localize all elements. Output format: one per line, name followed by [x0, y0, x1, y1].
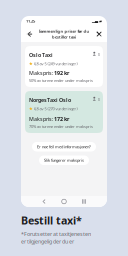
staticText: er tilgjengelig der du er	[21, 238, 74, 245]
staticText: NorgesTaxi Oslo	[29, 96, 71, 104]
staticText: 50% av turene ender under makspris	[29, 78, 93, 83]
button[interactable]: Tilbake	[24, 28, 34, 40]
staticText: Slik fungerer makspris	[44, 158, 84, 163]
button[interactable]: Pause	[79, 196, 89, 207]
staticText: Oslo Taxi	[29, 51, 53, 59]
staticText: Makspris: 192 kr	[29, 69, 69, 76]
button[interactable]: Er noe feil med informasjonen?	[32, 142, 96, 151]
staticText: 4	[97, 51, 99, 57]
button[interactable]: Slik fungerer makspris	[39, 155, 89, 165]
button[interactable]: Oslo Taxi	[25, 46, 103, 87]
staticText: 4,8 av 5 (270 vurderinger)	[34, 106, 78, 111]
button[interactable]: NorgesTaxi Oslo	[25, 91, 103, 133]
staticText: Er noe feil med informasjonen?	[37, 144, 91, 149]
staticText: Bestill taxi*	[21, 213, 82, 227]
button[interactable]: Forrige	[39, 196, 49, 207]
staticText: 4,8 av 5 (249 vurderinger)	[34, 61, 78, 66]
staticText: 11.25	[26, 18, 35, 24]
staticText: *Forutsetter at taxitjenesten	[21, 230, 91, 237]
staticText: bestiller taxi	[52, 34, 76, 39]
button[interactable]: Lukk	[94, 28, 104, 40]
staticText: 4	[97, 96, 99, 102]
button[interactable]: Spill av på nytt	[59, 196, 69, 207]
staticText: ▂▄ ▰	[92, 19, 102, 23]
staticText: Makspris: 172 kr	[29, 115, 69, 122]
staticText: Sammenlign priser før du	[38, 28, 89, 34]
staticText: 70% av turene ender under makspris	[29, 124, 93, 129]
